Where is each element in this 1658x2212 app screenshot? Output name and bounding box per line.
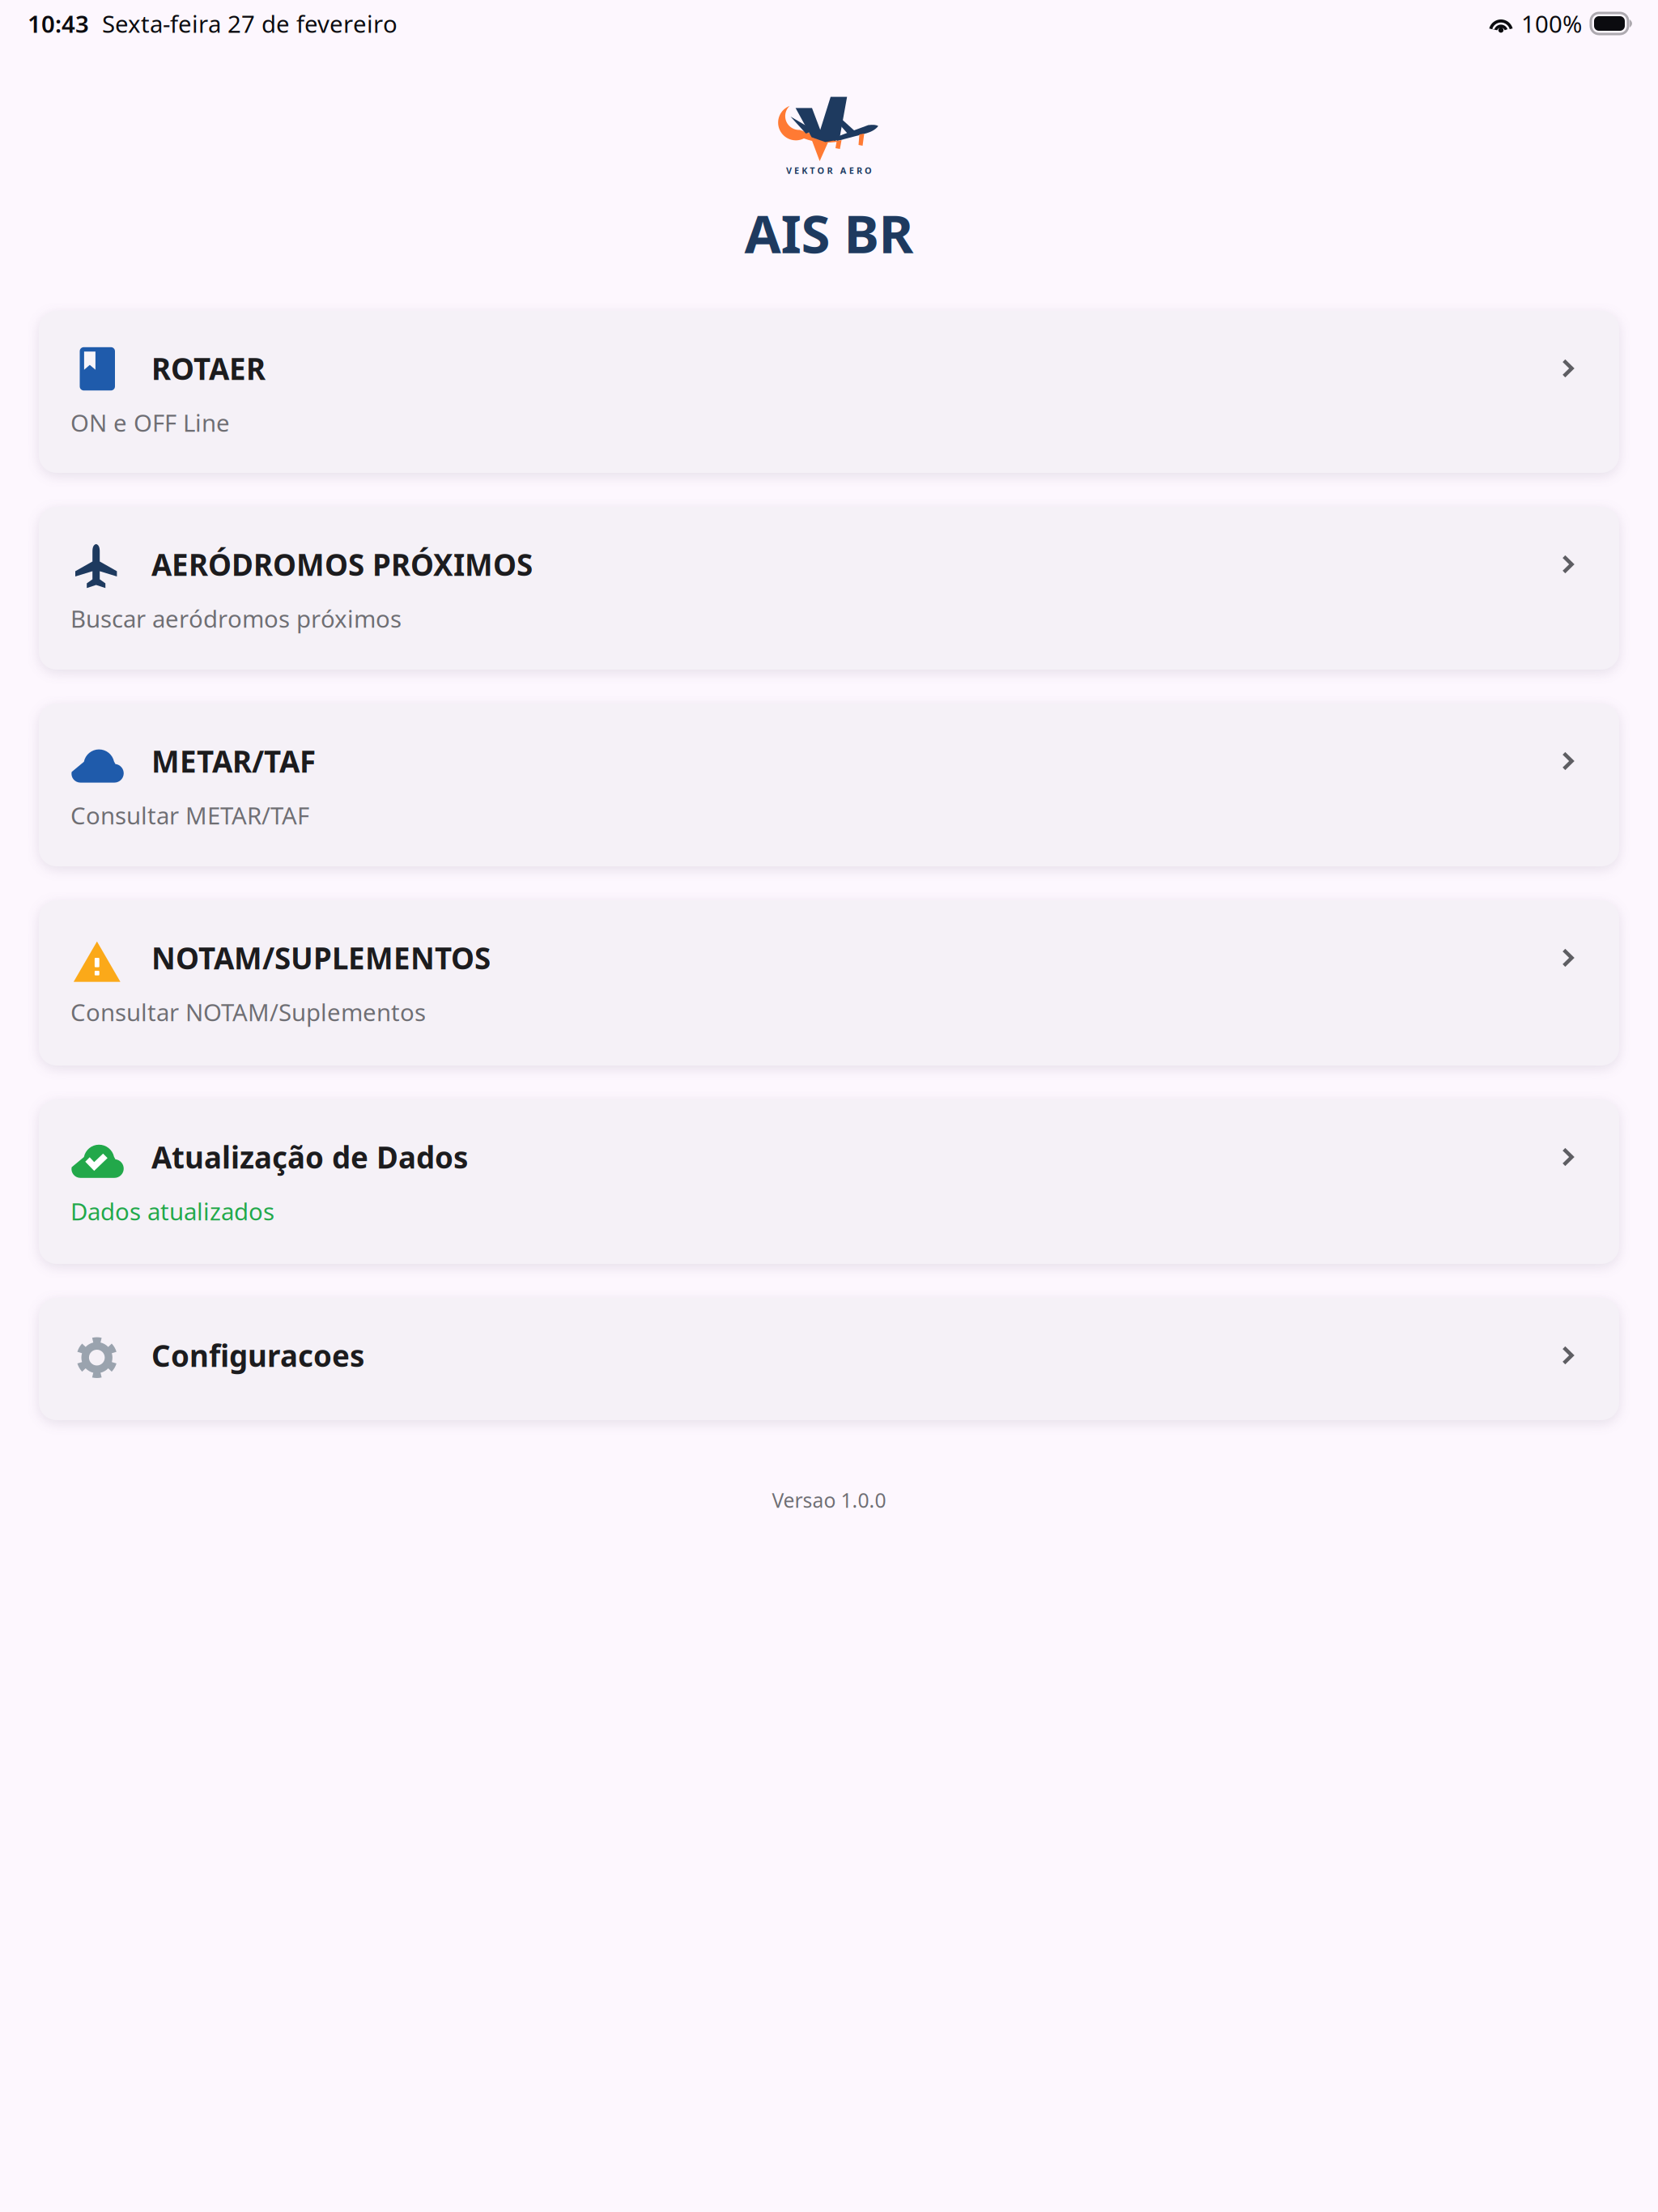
button[interactable]: ROTAER	[39, 311, 1619, 473]
staticText: Versao 1.0.0	[772, 1487, 886, 1514]
button[interactable]: AERÓDROMOS PRÓXIMOS	[39, 507, 1619, 670]
staticText: Sexta-feira 27 de fevereiro	[102, 7, 397, 40]
staticText: NOTAM/SUPLEMENTOS	[151, 938, 491, 978]
staticText: Consultar METAR/TAF	[70, 799, 309, 832]
staticText: ROTAER	[151, 348, 266, 389]
button[interactable]: Configuracoes	[39, 1298, 1619, 1420]
staticText: ON e OFF Line	[70, 406, 230, 439]
staticText: AERÓDROMOS PRÓXIMOS	[151, 544, 533, 584]
staticText: Consultar NOTAM/Suplementos	[70, 996, 426, 1028]
staticText: 100%	[1521, 7, 1582, 40]
staticText: 10:43	[28, 7, 89, 40]
staticText: Configuracoes	[151, 1335, 364, 1376]
staticText: AIS BR	[744, 197, 914, 269]
staticText: Buscar aeródromos próximos	[70, 602, 402, 635]
staticText: Atualização de Dados	[151, 1137, 468, 1177]
staticText: VEKTOR AERO	[786, 164, 872, 176]
button[interactable]: NOTAM/SUPLEMENTOS	[39, 900, 1619, 1066]
button[interactable]: Atualização de Dados	[39, 1100, 1619, 1264]
button[interactable]: METAR/TAF	[39, 704, 1619, 866]
staticText: METAR/TAF	[151, 741, 316, 781]
staticText: Dados atualizados	[70, 1195, 274, 1227]
